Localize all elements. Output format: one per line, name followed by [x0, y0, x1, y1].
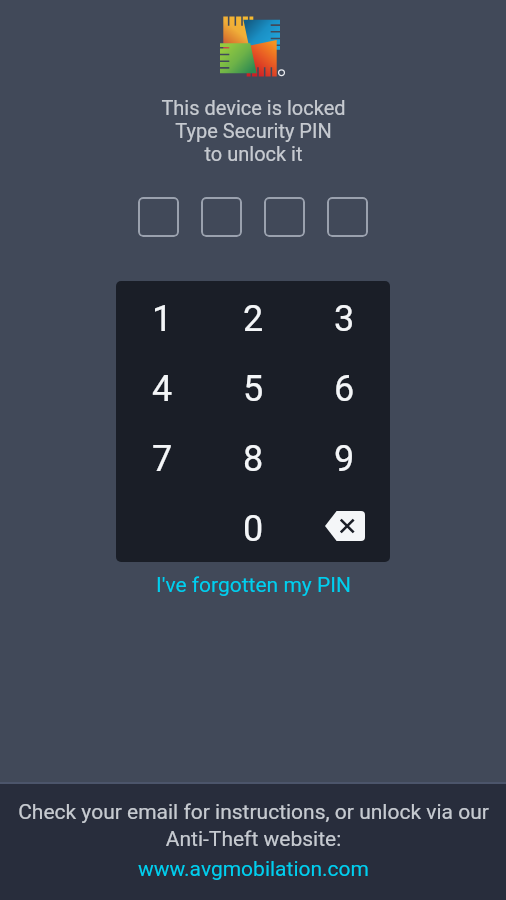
staticText: 6: [334, 368, 355, 410]
button[interactable]: 4: [116, 352, 208, 422]
button[interactable]: 0: [208, 492, 299, 562]
staticText: 9: [334, 438, 355, 480]
button[interactable]: www.avgmobilation.com: [128, 855, 379, 884]
button[interactable]: [138, 197, 179, 237]
button[interactable]: [327, 197, 368, 237]
staticText: I've forgotten my PIN: [156, 573, 351, 598]
button[interactable]: 9: [299, 422, 390, 492]
button[interactable]: 8: [208, 422, 299, 492]
staticText: 4: [152, 368, 173, 410]
button[interactable]: [264, 197, 305, 237]
button[interactable]: 7: [116, 422, 208, 492]
staticText: 8: [243, 438, 264, 480]
button[interactable]: Backspace: [299, 492, 390, 562]
button[interactable]: 5: [208, 352, 299, 422]
button[interactable]: 1: [116, 281, 208, 352]
button[interactable]: I've forgotten my PIN: [146, 569, 361, 602]
button[interactable]: 2: [208, 281, 299, 352]
staticText: 7: [152, 438, 173, 480]
staticText: 2: [243, 298, 264, 340]
staticText: 3: [334, 298, 355, 340]
button[interactable]: 3: [299, 281, 390, 352]
button[interactable]: 6: [299, 352, 390, 422]
staticText: Check your email for instructions, or un…: [18, 800, 489, 851]
staticText: 1: [152, 298, 173, 340]
staticText: This device is locked Type Security PIN …: [161, 96, 346, 165]
button[interactable]: [201, 197, 242, 237]
staticText: 5: [243, 368, 264, 410]
staticText: www.avgmobilation.com: [138, 857, 369, 882]
staticText: 0: [243, 508, 264, 550]
